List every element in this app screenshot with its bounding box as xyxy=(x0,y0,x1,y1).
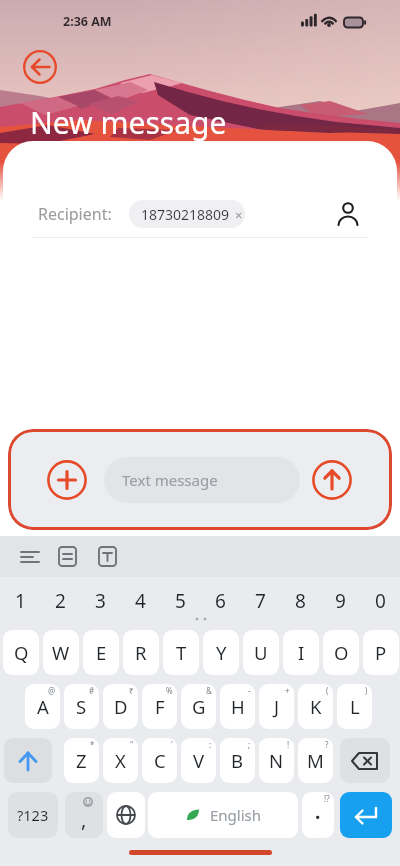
button[interactable]: 2 xyxy=(40,580,80,622)
button[interactable]: A xyxy=(25,684,60,729)
staticText: . xyxy=(315,799,321,825)
button[interactable]: I xyxy=(283,630,319,675)
button[interactable]: Z xyxy=(64,738,99,783)
button[interactable]: ?123 xyxy=(8,792,58,838)
button[interactable] xyxy=(47,460,87,500)
button[interactable]: S xyxy=(64,684,99,729)
staticText: Recipient: xyxy=(38,203,112,225)
button[interactable]: G xyxy=(181,684,216,729)
staticText: 6 xyxy=(215,588,226,614)
button[interactable] xyxy=(334,200,362,228)
button[interactable]: F xyxy=(142,684,177,729)
button[interactable]: P xyxy=(363,630,399,675)
button[interactable]: B xyxy=(220,738,255,783)
button[interactable] xyxy=(22,49,58,85)
button[interactable]: M xyxy=(298,738,333,783)
button[interactable]: 7 xyxy=(240,580,280,622)
button[interactable] xyxy=(340,738,390,783)
button[interactable]: 3 xyxy=(80,580,120,622)
staticText: !? xyxy=(324,793,330,804)
button[interactable]: X xyxy=(103,738,138,783)
staticText: Text message xyxy=(122,470,218,490)
staticText: ?123 xyxy=(17,805,49,825)
staticText: Z xyxy=(76,748,87,773)
staticText: L xyxy=(350,694,360,719)
staticText: ) xyxy=(365,685,368,696)
button[interactable] xyxy=(340,792,392,838)
button[interactable] xyxy=(107,792,145,838)
button[interactable]: Q xyxy=(3,630,39,675)
button[interactable]: V xyxy=(181,738,216,783)
staticText: I xyxy=(298,640,305,665)
button[interactable]: C xyxy=(142,738,177,783)
staticText: 5 xyxy=(175,588,186,614)
button[interactable]: K xyxy=(298,684,333,729)
button[interactable]: Y xyxy=(203,630,239,675)
staticText: # xyxy=(89,685,95,696)
staticText: English xyxy=(210,805,262,825)
staticText: W xyxy=(52,640,70,665)
button[interactable]: 4 xyxy=(120,580,160,622)
staticText: ' xyxy=(171,739,173,750)
button[interactable]: 1 xyxy=(0,580,40,622)
staticText: A xyxy=(37,694,49,719)
staticText: O xyxy=(334,640,349,665)
staticText: R xyxy=(135,640,147,665)
button[interactable]: 6 xyxy=(200,580,240,622)
staticText: S xyxy=(76,694,87,719)
staticText: M xyxy=(307,748,324,773)
button[interactable]: E xyxy=(83,630,119,675)
button[interactable]: English xyxy=(148,792,298,838)
button[interactable]: 18730218809 xyxy=(129,200,245,228)
staticText: 9 xyxy=(335,588,346,614)
button[interactable]: U xyxy=(243,630,279,675)
staticText: T xyxy=(176,640,187,665)
button[interactable]: , xyxy=(65,792,103,838)
button[interactable] xyxy=(14,543,44,571)
staticText: , xyxy=(81,806,87,833)
button[interactable]: N xyxy=(259,738,294,783)
staticText: ₹ xyxy=(129,685,134,696)
button[interactable]: 0 xyxy=(360,580,400,622)
staticText: 3 xyxy=(95,588,106,614)
button[interactable]: W xyxy=(43,630,79,675)
staticText: 0 xyxy=(375,588,386,614)
button[interactable] xyxy=(93,543,123,571)
staticText: 2:36 AM xyxy=(63,13,112,30)
button[interactable]: !? xyxy=(302,792,334,838)
button[interactable] xyxy=(53,543,83,571)
staticText: + xyxy=(285,685,290,696)
button[interactable]: 8 xyxy=(280,580,320,622)
staticText: K xyxy=(310,694,322,719)
staticText: C xyxy=(154,748,166,773)
button[interactable]: O xyxy=(323,630,359,675)
staticText: ( xyxy=(326,685,329,696)
button[interactable]: D xyxy=(103,684,138,729)
staticText: % xyxy=(166,685,173,696)
staticText: 2 xyxy=(55,588,66,614)
button[interactable]: T xyxy=(163,630,199,675)
button[interactable]: L xyxy=(337,684,372,729)
button[interactable]: 5 xyxy=(160,580,200,622)
staticText: Q xyxy=(14,640,29,665)
button[interactable]: H xyxy=(220,684,255,729)
button[interactable]: R xyxy=(123,630,159,675)
staticText: B xyxy=(231,748,244,773)
staticText: 8 xyxy=(295,588,306,614)
staticText: F xyxy=(155,694,165,719)
staticText: 1 xyxy=(15,588,26,614)
staticText: J xyxy=(274,694,280,719)
button[interactable] xyxy=(312,460,352,500)
button[interactable] xyxy=(4,738,52,783)
button[interactable]: 9 xyxy=(320,580,360,622)
staticText: H xyxy=(231,694,245,719)
staticText: ! xyxy=(287,739,290,750)
button[interactable]: Text message xyxy=(104,457,300,503)
button[interactable]: J xyxy=(259,684,294,729)
staticText: * xyxy=(90,739,95,750)
staticText: ; xyxy=(248,739,251,750)
staticText: P xyxy=(375,640,387,665)
staticText: N xyxy=(269,748,284,773)
staticText: - xyxy=(248,685,251,696)
staticText: " xyxy=(130,739,134,750)
